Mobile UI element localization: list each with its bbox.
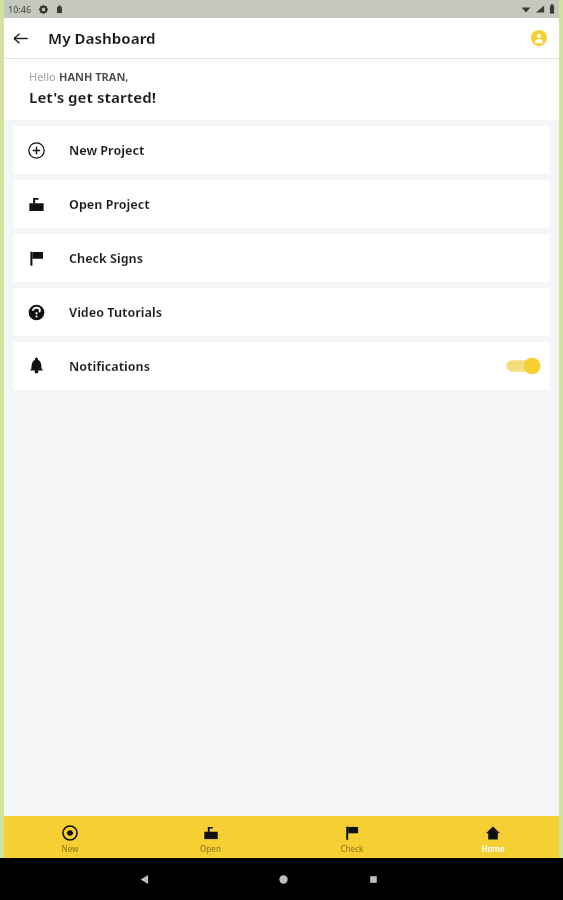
button[interactable]: Open [140,821,281,854]
staticText: HANH TRAN, [59,69,129,84]
button[interactable]: Check [281,821,422,854]
staticText: Hello [29,69,59,84]
button[interactable]: Check Signs [13,234,550,282]
staticText: 10:46 [8,3,32,15]
staticText: Home [481,843,505,854]
button[interactable]: Profile [519,18,559,58]
staticText: Notifications [69,358,151,375]
button[interactable]: Home [422,821,563,854]
staticText: Open [200,843,221,854]
button[interactable]: New [0,821,140,854]
button[interactable]: Video Tutorials [13,288,550,336]
staticText: My Dashboard [48,28,156,48]
staticText: Open Project [69,196,150,213]
staticText: New Project [69,142,145,159]
button[interactable]: New Project [13,126,550,174]
staticText: Let's get started! [29,87,156,107]
staticText: Check Signs [69,250,143,267]
staticText: Check [340,843,364,854]
staticText: New [61,843,79,854]
button[interactable]: Back [0,18,40,58]
button[interactable]: Notifications [13,342,550,390]
button[interactable]: Notifications toggle [504,355,542,377]
staticText: Video Tutorials [69,304,163,321]
button[interactable]: Open Project [13,180,550,228]
